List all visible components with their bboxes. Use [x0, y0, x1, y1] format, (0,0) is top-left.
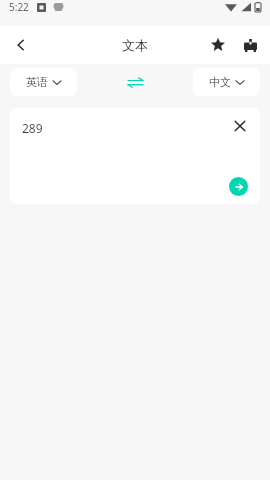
staticText: 5:22	[9, 0, 29, 14]
button[interactable]: Translate	[229, 177, 248, 196]
button[interactable]: Back	[4, 28, 38, 62]
staticText: 英语	[26, 75, 48, 89]
button[interactable]: Favorites	[202, 29, 234, 61]
button[interactable]: Camera	[234, 29, 266, 61]
button[interactable]: Clear text	[224, 110, 256, 142]
staticText: 文本	[122, 37, 148, 53]
staticText: 中文	[209, 75, 231, 89]
button[interactable]: 中文	[193, 68, 260, 96]
button[interactable]: 英语	[10, 68, 77, 96]
staticText: 289	[22, 120, 43, 136]
button[interactable]: Swap languages	[118, 68, 152, 96]
